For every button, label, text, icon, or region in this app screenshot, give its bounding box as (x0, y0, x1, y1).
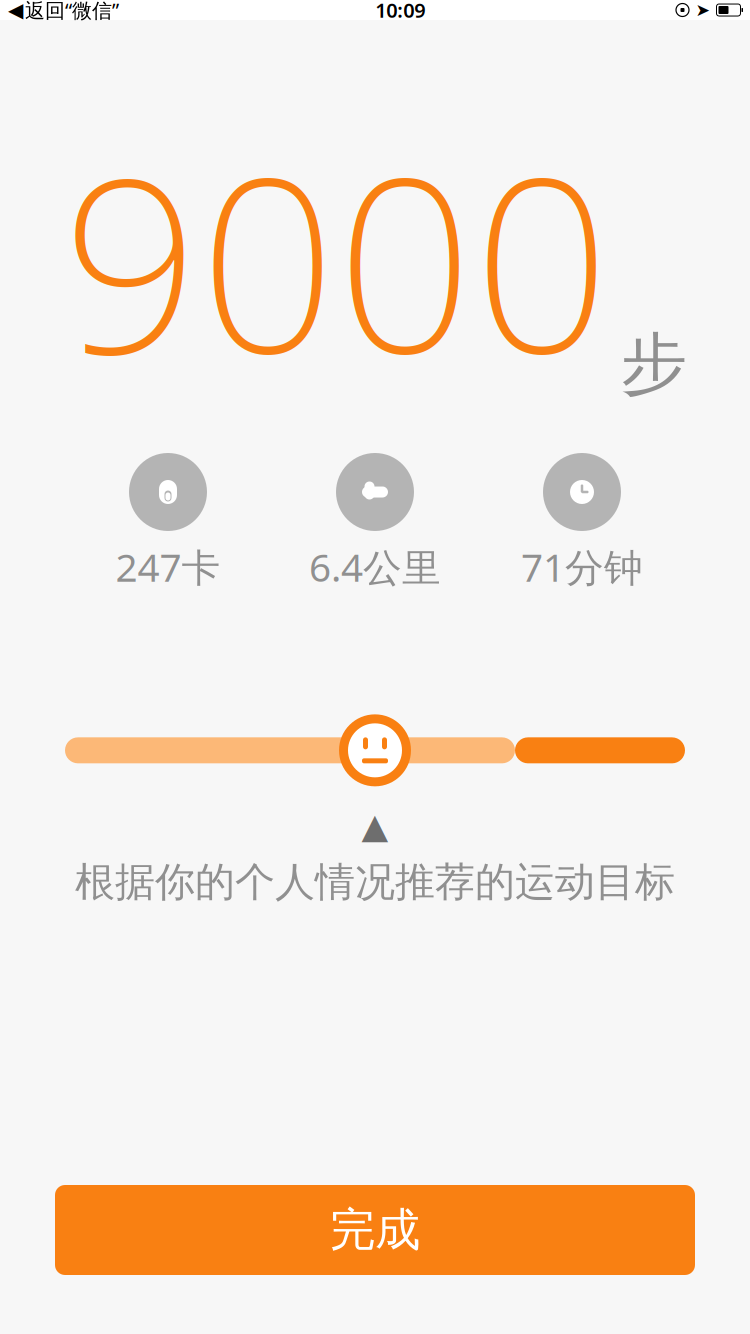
staticText: 返回“微信” (25, 0, 119, 23)
staticText: 6.4公里 (309, 541, 441, 592)
staticText: ▲ (361, 806, 388, 846)
staticText: ◀ (8, 0, 23, 21)
staticText: 步 (620, 323, 687, 405)
staticText: 71分钟 (521, 541, 643, 592)
button[interactable]: 返回微信 (3, 0, 125, 20)
staticText: ➤ (695, 0, 710, 20)
staticText: 247卡 (115, 541, 220, 592)
staticText: 根据你的个人情况推荐的运动目标 (75, 858, 675, 907)
button[interactable]: 完成 (55, 1185, 695, 1275)
staticText: 完成 (330, 1202, 420, 1258)
staticText: 9000 (62, 101, 610, 419)
staticText: 10:09 (375, 0, 425, 23)
